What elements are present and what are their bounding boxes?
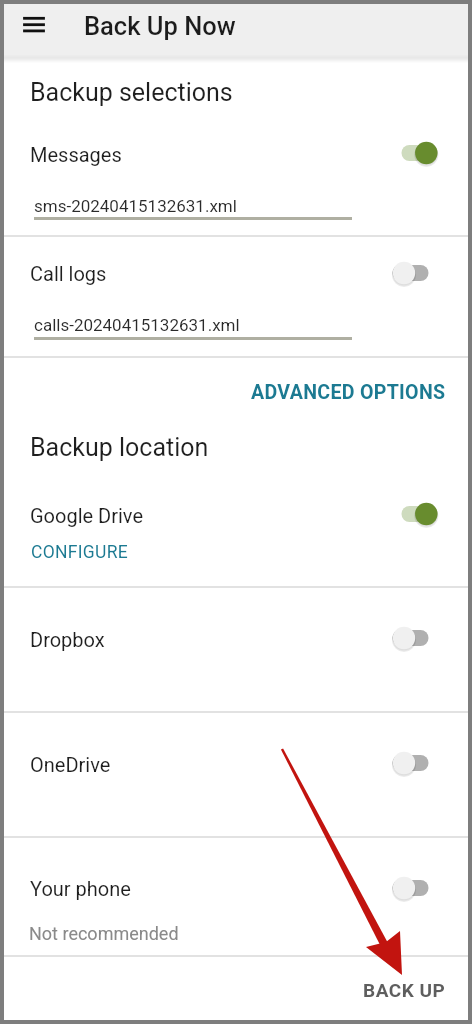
button[interactable]: ADVANCED OPTIONS <box>246 372 450 412</box>
button[interactable]: BACK UP <box>350 970 458 1010</box>
staticText: Your phone <box>30 877 131 900</box>
staticText: OneDrive <box>30 753 111 776</box>
button[interactable]: Back Up Now <box>84 11 236 41</box>
button[interactable] <box>4 138 468 178</box>
staticText: Google Drive <box>30 504 144 527</box>
staticText: sms-20240415132631.xml <box>34 196 237 216</box>
button[interactable] <box>4 747 468 791</box>
staticText: Messages <box>30 143 122 166</box>
staticText: calls-20240415132631.xml <box>34 315 240 335</box>
button[interactable]: Turn on <box>388 620 448 656</box>
staticText: CONFIGURE <box>31 542 129 563</box>
staticText: Not recommended <box>29 923 179 944</box>
button[interactable]: CONFIGURE <box>25 539 135 566</box>
staticText: Backup selections <box>30 78 233 107</box>
button[interactable]: Turn off <box>388 496 448 532</box>
button[interactable]: Open navigation menu <box>12 4 56 48</box>
button[interactable]: Turn on <box>388 870 448 906</box>
button[interactable]: Turn on <box>388 255 448 291</box>
staticText: Backup location <box>30 433 209 462</box>
staticText: Dropbox <box>30 628 105 651</box>
button[interactable] <box>4 499 468 539</box>
button[interactable]: Turn off <box>388 135 448 171</box>
button[interactable] <box>4 622 468 666</box>
staticText: Call logs <box>30 262 107 285</box>
button[interactable]: Turn on <box>388 745 448 781</box>
staticText: ADVANCED OPTIONS <box>251 381 446 404</box>
staticText: Back Up Now <box>84 11 236 41</box>
button[interactable] <box>4 872 468 916</box>
staticText: BACK UP <box>363 979 446 1001</box>
button[interactable] <box>4 257 468 297</box>
